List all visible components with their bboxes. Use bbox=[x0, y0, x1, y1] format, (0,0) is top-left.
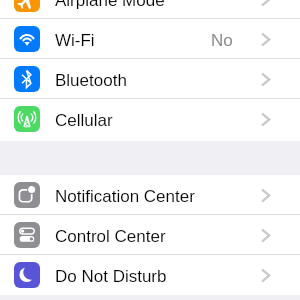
staticText: Wi-Fi bbox=[55, 31, 95, 50]
staticText: Airplane Mode bbox=[55, 0, 165, 10]
button[interactable]: Do Not Disturb bbox=[0, 255, 300, 295]
staticText: Cellular bbox=[55, 111, 113, 130]
staticText: Control Center bbox=[55, 227, 166, 246]
staticText: No bbox=[211, 31, 233, 50]
button[interactable]: Control Center bbox=[0, 215, 300, 255]
button[interactable]: Wi-Fi bbox=[0, 19, 300, 59]
button[interactable]: Airplane Mode bbox=[0, 0, 300, 19]
staticText: Bluetooth bbox=[55, 71, 127, 90]
staticText: Do Not Disturb bbox=[55, 267, 167, 286]
staticText: Notification Center bbox=[55, 187, 195, 206]
button[interactable]: Cellular bbox=[0, 99, 300, 139]
button[interactable]: Notification Center bbox=[0, 175, 300, 215]
button[interactable]: Bluetooth bbox=[0, 59, 300, 99]
